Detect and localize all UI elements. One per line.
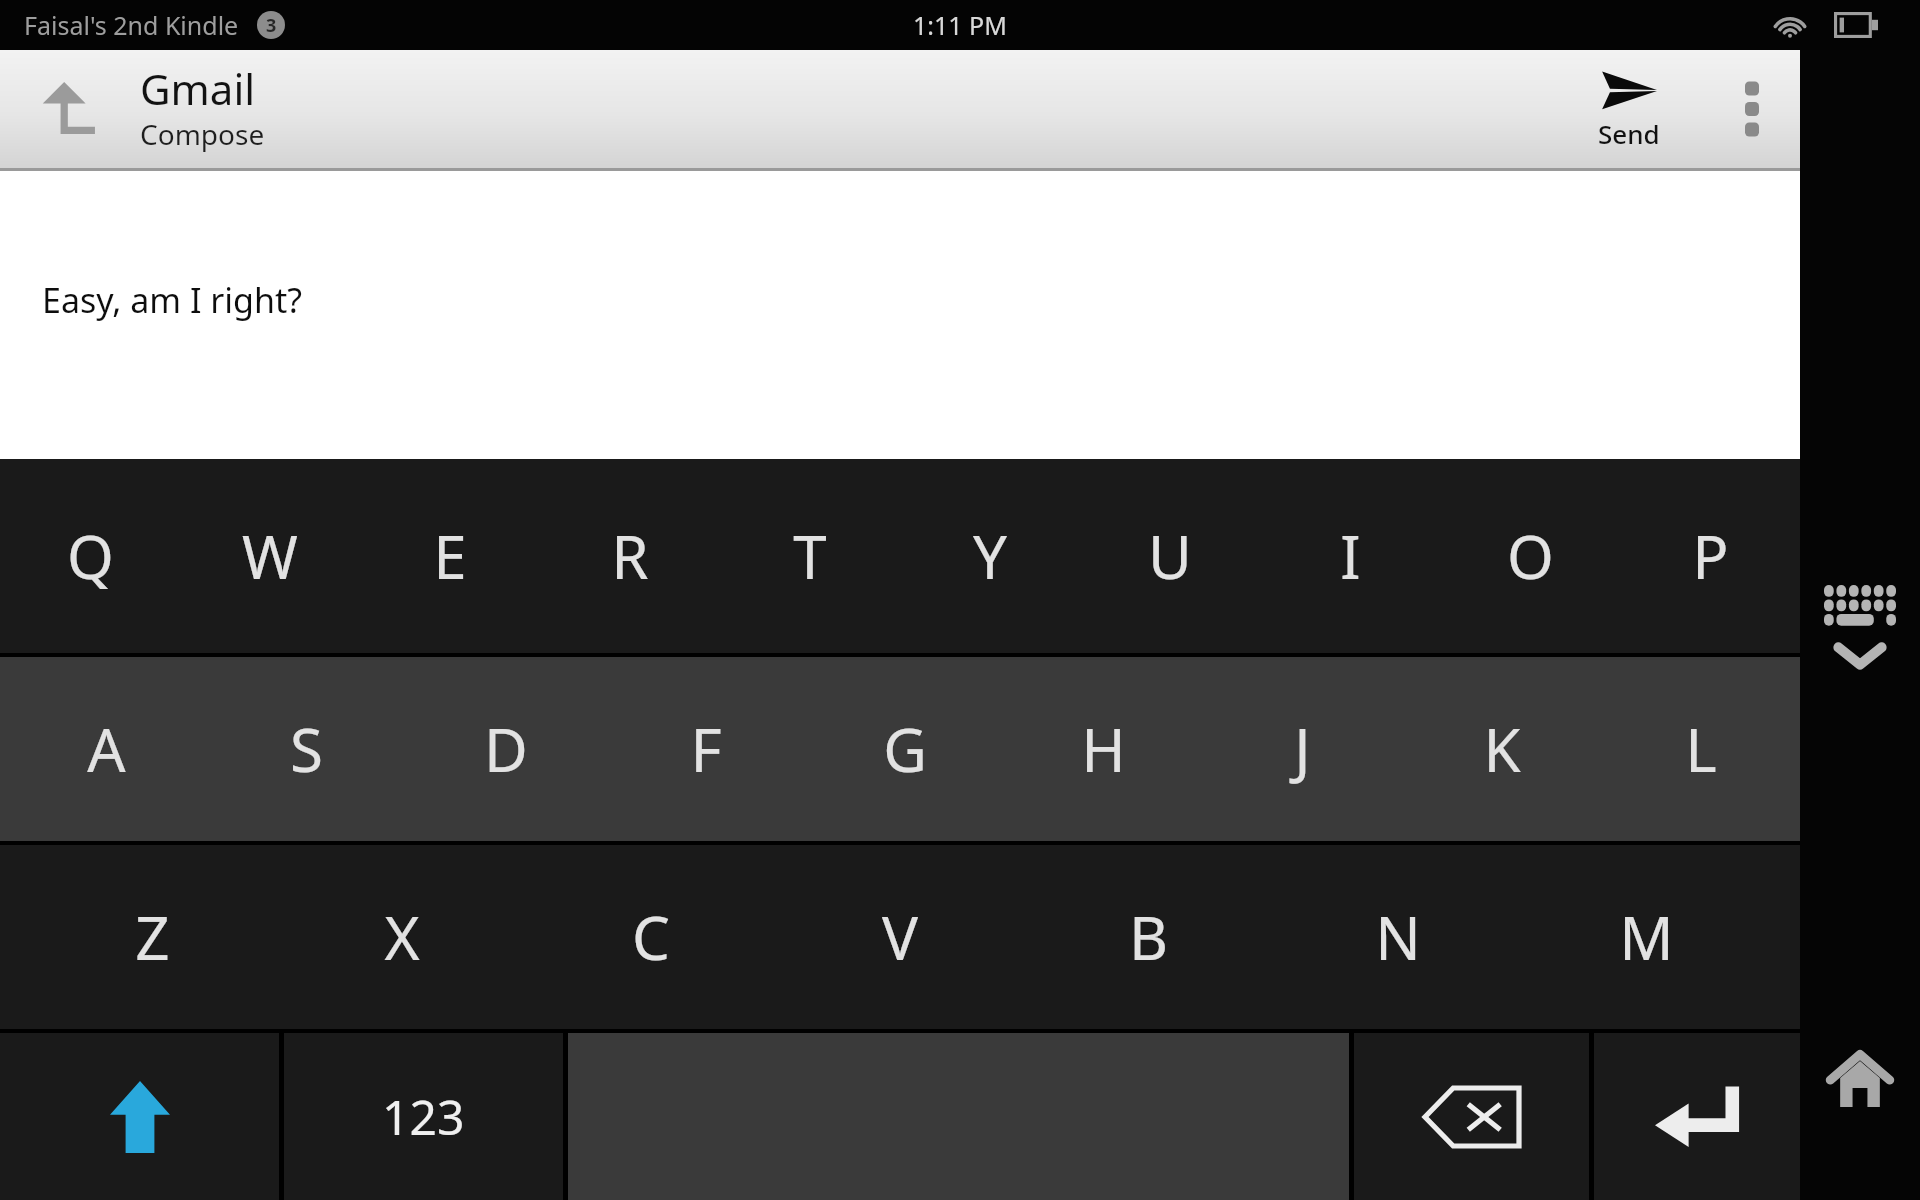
button[interactable]: G: [805, 657, 1004, 841]
button[interactable]: Hide keyboard: [1805, 566, 1915, 686]
button[interactable]: O: [1440, 459, 1620, 653]
button[interactable]: X: [277, 845, 526, 1029]
staticText: X: [384, 896, 420, 978]
staticText: G: [883, 708, 927, 790]
staticText: 123: [382, 1084, 465, 1149]
staticText: L: [1685, 708, 1717, 790]
button[interactable]: R: [540, 459, 720, 653]
button[interactable]: P: [1620, 459, 1800, 653]
staticText: U: [1148, 515, 1192, 597]
staticText: F: [690, 708, 722, 790]
staticText: V: [882, 896, 918, 978]
button[interactable]: Navigate up: [0, 50, 140, 168]
button[interactable]: N: [1273, 845, 1522, 1029]
button[interactable]: Home: [1805, 1024, 1915, 1134]
staticText: Send: [1598, 116, 1660, 151]
staticText: D: [484, 708, 528, 790]
staticText: I: [1340, 515, 1361, 597]
staticText: Easy, am I right?: [42, 277, 303, 323]
staticText: B: [1129, 896, 1168, 978]
button[interactable]: E: [360, 459, 540, 653]
staticText: R: [611, 515, 649, 597]
staticText: N: [1375, 896, 1421, 978]
staticText: 3: [266, 13, 277, 38]
staticText: C: [632, 896, 670, 978]
staticText: S: [290, 708, 323, 790]
staticText: 1:11 PM: [913, 8, 1007, 42]
button[interactable]: U: [1080, 459, 1260, 653]
button[interactable]: L: [1601, 657, 1800, 841]
staticText: M: [1619, 896, 1674, 978]
button[interactable]: Easy, am I right?: [0, 171, 1800, 459]
button[interactable]: F: [606, 657, 805, 841]
button[interactable]: Backspace: [1354, 1033, 1589, 1200]
button[interactable]: D: [406, 657, 606, 841]
staticText: J: [1294, 708, 1311, 790]
staticText: W: [242, 515, 298, 597]
staticText: O: [1507, 515, 1554, 597]
button[interactable]: S: [206, 657, 406, 841]
button[interactable]: I: [1260, 459, 1440, 653]
button[interactable]: W: [180, 459, 360, 653]
button[interactable]: J: [1203, 657, 1402, 841]
staticText: Y: [973, 515, 1007, 597]
staticText: Compose: [140, 115, 265, 153]
button[interactable]: Send: [1554, 50, 1704, 168]
button[interactable]: V: [775, 845, 1024, 1029]
staticText: H: [1081, 708, 1126, 790]
staticText: P: [1692, 515, 1729, 597]
staticText: Gmail: [140, 60, 256, 117]
button[interactable]: M: [1522, 845, 1771, 1029]
button[interactable]: K: [1402, 657, 1601, 841]
button[interactable]: C: [526, 845, 775, 1029]
button[interactable]: Z: [28, 845, 277, 1029]
button[interactable]: More options: [1704, 50, 1800, 168]
button[interactable]: T: [720, 459, 900, 653]
staticText: Q: [67, 515, 114, 597]
staticText: K: [1483, 708, 1521, 790]
button[interactable]: B: [1024, 845, 1273, 1029]
button[interactable]: Shift: [0, 1033, 279, 1200]
staticText: E: [433, 515, 467, 597]
button[interactable]: 123: [284, 1033, 563, 1200]
button[interactable]: A: [6, 657, 206, 841]
staticText: Z: [135, 896, 170, 978]
staticText: Faisal's 2nd Kindle: [24, 8, 239, 42]
button[interactable]: Q: [0, 459, 180, 653]
button[interactable]: Y: [900, 459, 1080, 653]
button[interactable]: H: [1004, 657, 1203, 841]
staticText: T: [793, 515, 827, 597]
button[interactable]: Enter: [1594, 1033, 1800, 1200]
staticText: A: [87, 708, 126, 790]
